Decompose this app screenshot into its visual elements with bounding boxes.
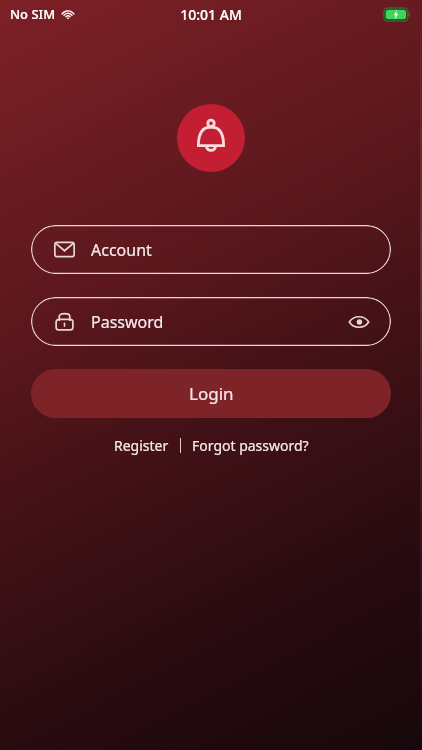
staticText: Login — [189, 382, 234, 405]
staticText: 10:01 AM — [180, 5, 242, 24]
button[interactable]: Account — [31, 225, 391, 274]
button[interactable]: Forgot password? — [186, 432, 315, 459]
staticText: Account — [91, 239, 368, 261]
staticText: Forgot password? — [192, 436, 309, 455]
button[interactable]: Show password — [339, 302, 379, 342]
button[interactable]: Password — [31, 297, 391, 346]
button[interactable]: Login — [31, 369, 391, 418]
button[interactable]: Register — [108, 432, 175, 459]
other: App logo — [177, 104, 245, 172]
staticText: Register — [114, 436, 169, 455]
staticText: No SIM — [10, 5, 56, 23]
staticText: Password — [91, 311, 339, 333]
